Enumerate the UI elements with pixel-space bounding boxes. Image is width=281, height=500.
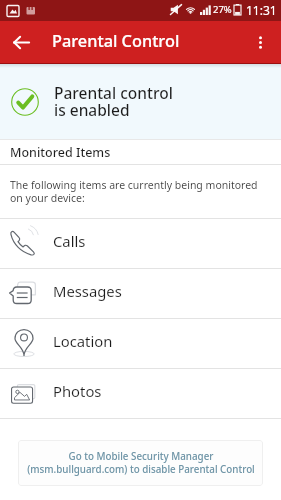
staticText: Calls [53,231,86,251]
button[interactable]: Go to Mobile Security Manager (msm.bullg… [18,440,263,486]
staticText: The following items are currently being … [10,178,258,205]
staticText: Photos [53,381,102,401]
button[interactable]: Back [0,21,42,63]
button[interactable]: Location [0,319,281,368]
staticText: 27% [213,3,232,16]
staticText: Parental control is enabled [54,82,173,121]
button[interactable]: Photos [0,369,281,418]
staticText: Parental Control [52,30,180,52]
staticText: Messages [53,281,122,301]
staticText: Go to Mobile Security Manager (msm.bullg… [27,450,255,476]
staticText: Monitored Items [10,144,111,161]
staticText: 11:31 [246,2,277,18]
button[interactable]: Messages [0,269,281,318]
button[interactable]: Calls [0,219,281,268]
staticText: Location [53,331,113,351]
button[interactable]: More options [239,21,281,63]
